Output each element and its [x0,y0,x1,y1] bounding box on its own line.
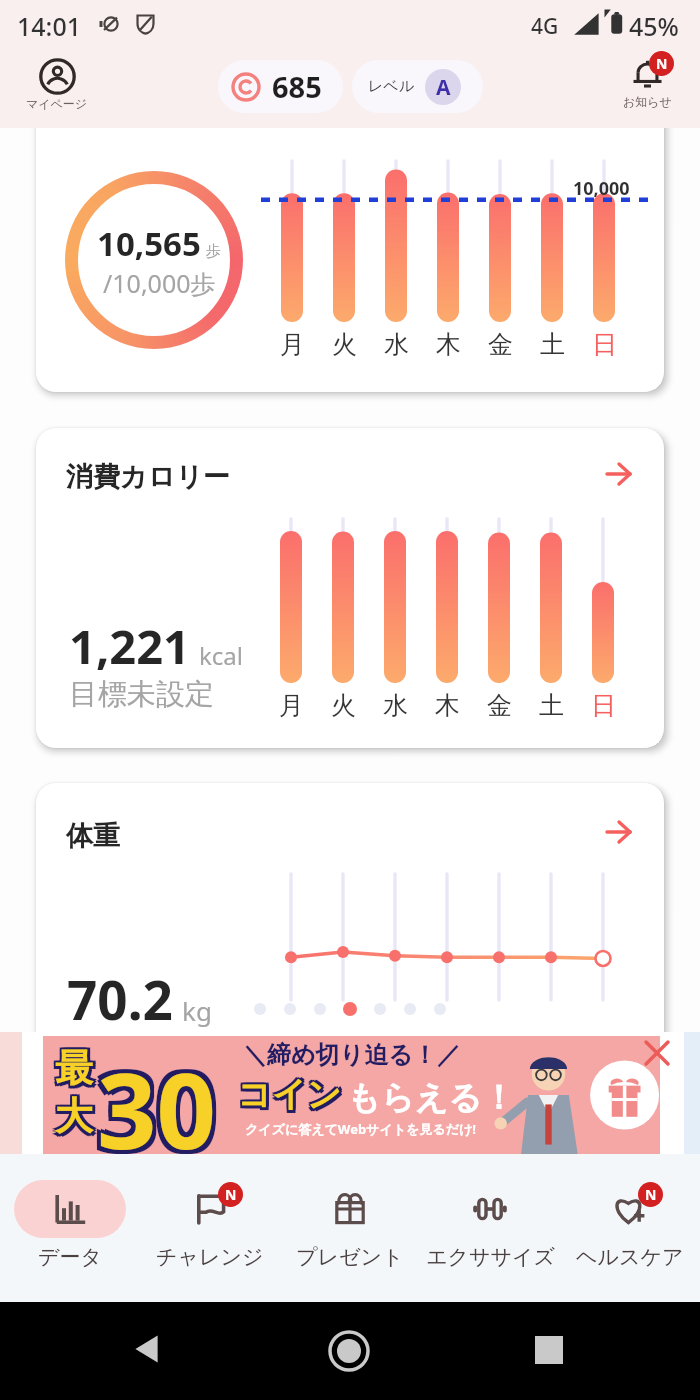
staticText: 30 [101,1042,220,1154]
staticText: 大 [58,1090,96,1138]
staticText: 最 [55,1044,93,1092]
staticText: 月 [280,329,305,360]
staticText: 最 [58,1047,96,1095]
staticText: ＼締め切り迫る！／ [243,1040,461,1070]
staticText: 大 [55,1090,93,1138]
staticText: 大 [53,1092,91,1140]
staticText: プレゼント [296,1244,404,1270]
staticText: 大 [58,1095,96,1143]
staticText: /10,000歩 [103,266,216,300]
staticText: 歩 [206,242,221,261]
button[interactable]: エクササイズ [420,1154,560,1302]
staticText: 日 [592,329,617,360]
button[interactable]: お知らせ [617,58,678,109]
staticText: 土 [539,690,564,721]
staticText: コイン [240,1073,345,1116]
staticText: 30 [97,1034,216,1152]
button[interactable]: 最 [43,1036,660,1154]
staticText: 火 [331,690,356,721]
staticText: 10,565 [97,221,201,266]
staticText: コイン [240,1071,345,1114]
staticText: N [645,1185,657,1204]
button[interactable]: 閉じる [644,1040,670,1066]
staticText: コイン [237,1071,342,1114]
staticText: 30 [93,1034,212,1152]
button[interactable]: ホーム [326,1328,372,1374]
staticText: データ [38,1244,102,1270]
staticText: 大 [53,1095,91,1143]
staticText: 消費カロリー [66,460,230,494]
staticText: N [656,54,668,73]
button[interactable]: 戻る [130,1332,160,1366]
staticText: 金 [487,690,512,721]
staticText: 30 [101,1034,220,1152]
staticText: 金 [488,329,513,360]
staticText: 月 [279,690,304,721]
staticText: N [225,1185,237,1204]
button[interactable]: 消費カロリー [36,428,664,748]
staticText: チャレンジ [156,1244,264,1270]
staticText: 木 [435,690,460,721]
staticText: 10,000 [573,176,630,201]
staticText: コイン [240,1076,345,1119]
button[interactable]: N [560,1154,700,1302]
staticText: 45% [629,9,679,43]
button[interactable]: データ [0,1154,140,1302]
staticText: レベル [368,77,415,96]
staticText: A [436,73,451,102]
staticText: エクササイズ [426,1244,555,1270]
staticText: 最 [53,1047,91,1095]
staticText: 最 [58,1044,96,1092]
staticText: 土 [540,329,565,360]
staticText: コイン [235,1071,340,1114]
staticText: マイページ [26,96,88,111]
staticText: コイン [237,1076,342,1119]
staticText: 30 [97,1042,216,1154]
staticText: kg [182,993,212,1028]
staticText: 大 [53,1090,91,1138]
staticText: 体重 [66,819,120,853]
staticText: 30 [97,1038,216,1154]
staticText: 30 [101,1038,220,1154]
button[interactable]: レベル [352,60,483,113]
staticText: ヘルスケア [576,1244,684,1270]
staticText: 最 [53,1044,91,1092]
staticText: 最 [55,1042,93,1090]
staticText: 685 [272,67,322,106]
staticText: 水 [383,690,408,721]
staticText: 大 [55,1092,93,1140]
staticText: コイン [237,1073,342,1116]
staticText: 最 [55,1047,93,1095]
staticText: もらえる！ [347,1077,516,1119]
staticText: 木 [436,329,461,360]
button[interactable]: 詳細を見る [605,818,633,846]
staticText: 最 [53,1042,91,1090]
button[interactable]: 体重 [36,783,664,1083]
staticText: 最 [58,1042,96,1090]
staticText: コイン [235,1073,340,1116]
staticText: 4G [531,12,559,41]
staticText: 日 [591,690,616,721]
button[interactable]: N [140,1154,280,1302]
staticText: コイン [235,1076,340,1119]
staticText: 14:01 [17,9,82,43]
staticText: 1,221 [69,614,190,678]
button[interactable]: マイページ [20,58,94,111]
staticText: 水 [384,329,409,360]
staticText: 70.2 [67,963,173,1035]
staticText: 大 [58,1092,96,1140]
staticText: kcal [199,639,243,672]
button[interactable]: 10,565 [36,128,664,392]
staticText: 30 [93,1042,212,1154]
staticText: 目標未設定 [69,676,214,713]
button[interactable]: 685 [218,60,343,113]
staticText: 大 [55,1095,93,1143]
staticText: お知らせ [623,94,672,109]
button[interactable]: 詳細を見る [605,460,633,488]
staticText: クイズに答えてWebサイトを見るだけ! [245,1120,476,1138]
button[interactable]: プレゼント [280,1154,420,1302]
staticText: 火 [332,329,357,360]
